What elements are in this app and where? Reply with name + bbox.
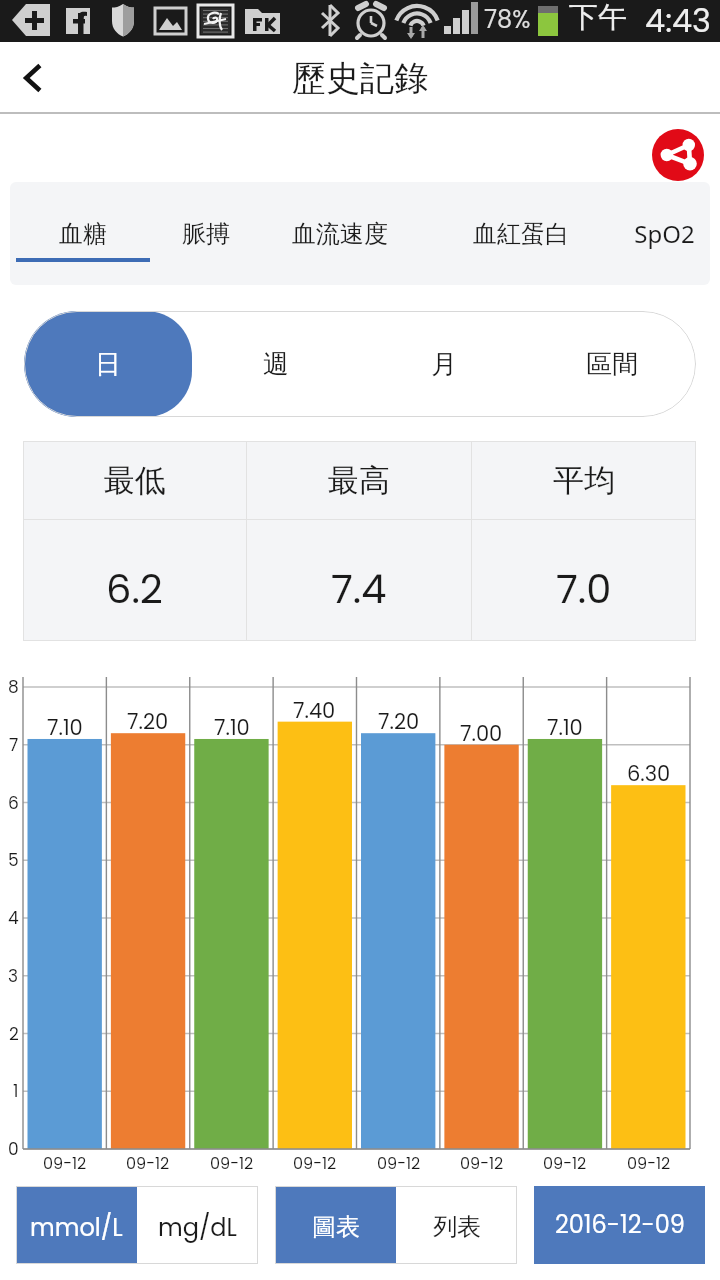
staticText: 6: [8, 791, 19, 815]
button[interactable]: SpO2: [624, 182, 704, 285]
staticText: 最高: [328, 461, 390, 500]
staticText: 6.2: [106, 561, 163, 617]
staticText: 2: [9, 1022, 19, 1046]
button[interactable]: 日: [24, 311, 192, 417]
button[interactable]: Share: [652, 129, 704, 181]
staticText: 月: [431, 348, 457, 381]
staticText: 09-12: [460, 1152, 504, 1174]
button[interactable]: 週: [192, 311, 360, 417]
staticText: 下午: [569, 0, 627, 36]
button[interactable]: 列表: [396, 1186, 517, 1264]
staticText: 09-12: [627, 1152, 671, 1174]
staticText: 8: [8, 675, 19, 699]
button[interactable]: 2016-12-09: [534, 1186, 705, 1264]
staticText: 7.10: [214, 713, 250, 742]
staticText: 7.0: [556, 561, 612, 617]
staticText: 09-12: [293, 1152, 337, 1174]
staticText: 09-12: [43, 1152, 87, 1174]
staticText: 0: [8, 1137, 19, 1161]
button[interactable]: mmol/L: [16, 1186, 137, 1264]
staticText: 血紅蛋白: [473, 219, 569, 249]
staticText: 血流速度: [292, 219, 388, 249]
staticText: 7.20: [127, 707, 169, 736]
button[interactable]: 血糖: [16, 182, 150, 285]
staticText: 區間: [586, 348, 638, 381]
staticText: 4: [8, 906, 19, 930]
staticText: 2016-12-09: [555, 1208, 685, 1242]
staticText: 7: [9, 733, 19, 757]
staticText: 7.00: [460, 719, 503, 748]
staticText: 週: [263, 348, 289, 381]
button[interactable]: mg/dL: [137, 1186, 258, 1264]
staticText: mmol/L: [30, 1211, 123, 1245]
staticText: 血糖: [59, 219, 107, 249]
staticText: 7.40: [293, 696, 336, 725]
button[interactable]: 圖表: [275, 1186, 396, 1264]
staticText: 7.10: [547, 713, 583, 742]
staticText: mg/dL: [158, 1211, 237, 1245]
button[interactable]: 脈搏: [150, 182, 262, 285]
button[interactable]: Back: [4, 49, 62, 107]
staticText: 列表: [433, 1212, 481, 1242]
button[interactable]: 血紅蛋白: [418, 182, 624, 285]
staticText: SpO2: [634, 217, 695, 250]
button[interactable]: 區間: [528, 311, 696, 417]
staticText: 最低: [104, 461, 166, 500]
staticText: 5: [8, 848, 19, 872]
staticText: 圖表: [312, 1212, 360, 1242]
staticText: 09-12: [377, 1152, 421, 1174]
staticText: 7.20: [378, 707, 420, 736]
staticText: 脈搏: [182, 219, 230, 249]
staticText: 09-12: [543, 1152, 587, 1174]
button[interactable]: 血流速度: [262, 182, 418, 285]
staticText: 6.30: [627, 759, 671, 788]
staticText: 7.10: [47, 713, 83, 742]
staticText: 09-12: [126, 1152, 170, 1174]
button[interactable]: 月: [360, 311, 528, 417]
staticText: 歷史記錄: [292, 57, 428, 100]
staticText: 日: [95, 348, 121, 381]
staticText: 4:43: [645, 0, 711, 40]
staticText: 7.4: [331, 561, 387, 617]
staticText: 3: [8, 964, 19, 988]
staticText: 78%: [484, 3, 531, 37]
staticText: 09-12: [210, 1152, 254, 1174]
staticText: 1: [13, 1079, 19, 1103]
staticText: 平均: [553, 461, 615, 500]
